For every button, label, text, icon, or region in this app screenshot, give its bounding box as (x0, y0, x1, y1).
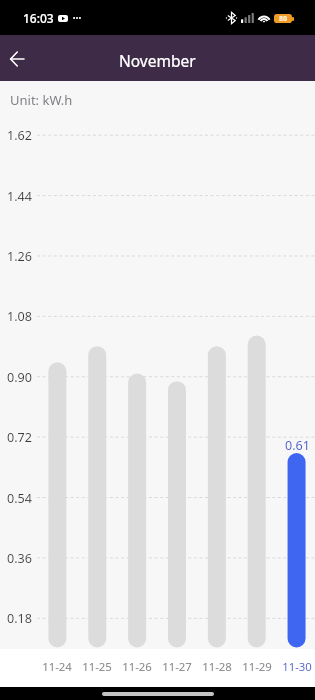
button[interactable]: 11-27 (168, 381, 186, 647)
button[interactable]: 11-30 (288, 453, 306, 648)
staticText: November (119, 50, 196, 71)
staticText: 16:03 (23, 10, 54, 26)
staticText: 80 (279, 14, 288, 23)
button[interactable]: 11-29 (248, 336, 266, 648)
staticText: 11-30 (282, 659, 312, 675)
button[interactable]: 11-24 (48, 362, 66, 647)
staticText: 0.36 (7, 550, 32, 566)
staticText: Unit: kW.h (10, 91, 73, 109)
staticText: 11-27 (162, 659, 192, 675)
staticText: 11-28 (202, 659, 232, 675)
staticText: 0.72 (7, 429, 32, 445)
staticText: 1.08 (7, 308, 32, 324)
staticText: 0.54 (7, 490, 32, 506)
staticText: 1.62 (7, 127, 32, 143)
button[interactable]: 11-26 (128, 373, 146, 647)
staticText: 0.61 (285, 437, 310, 454)
button[interactable]: 11-28 (208, 346, 226, 647)
button[interactable]: Back (0, 42, 34, 76)
staticText: 11-26 (122, 659, 152, 675)
staticText: 1.26 (7, 248, 32, 264)
staticText: 0.90 (7, 369, 32, 385)
staticText: 1.44 (7, 188, 32, 204)
button[interactable]: 11-25 (88, 346, 106, 647)
staticText: 11-25 (82, 659, 112, 675)
staticText: 11-24 (42, 659, 72, 675)
staticText: 11-29 (242, 659, 272, 675)
staticText: 0.18 (7, 610, 32, 626)
